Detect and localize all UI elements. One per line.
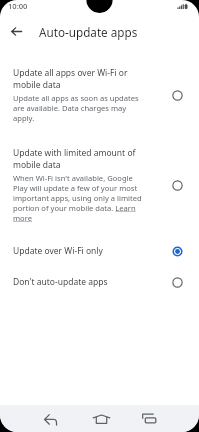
button[interactable]: Don't auto-update apps <box>0 267 199 298</box>
button[interactable]: Update over Wi-Fi only <box>0 236 199 267</box>
button[interactable]: Update with limited amount of mobile dat… <box>0 138 199 236</box>
staticText: Auto-update apps <box>39 24 138 40</box>
staticText: Update with limited amount of mobile dat… <box>13 147 147 171</box>
button[interactable]: Back <box>38 406 63 431</box>
staticText: Update all apps as soon as updates are a… <box>13 93 147 123</box>
button[interactable]: Update all apps over Wi-Fi or mobile dat… <box>0 58 199 138</box>
button[interactable]: Home <box>89 407 114 432</box>
staticText: 10:00 <box>8 1 28 11</box>
button[interactable]: Recent apps <box>137 406 162 431</box>
staticText: Don't auto-update apps <box>13 276 108 288</box>
staticText: Update all apps over Wi-Fi or mobile dat… <box>13 67 147 91</box>
button[interactable]: Back <box>5 20 27 42</box>
staticText: When Wi-Fi isn't available, Google Play … <box>13 173 147 223</box>
staticText: Update over Wi-Fi only <box>13 245 103 257</box>
